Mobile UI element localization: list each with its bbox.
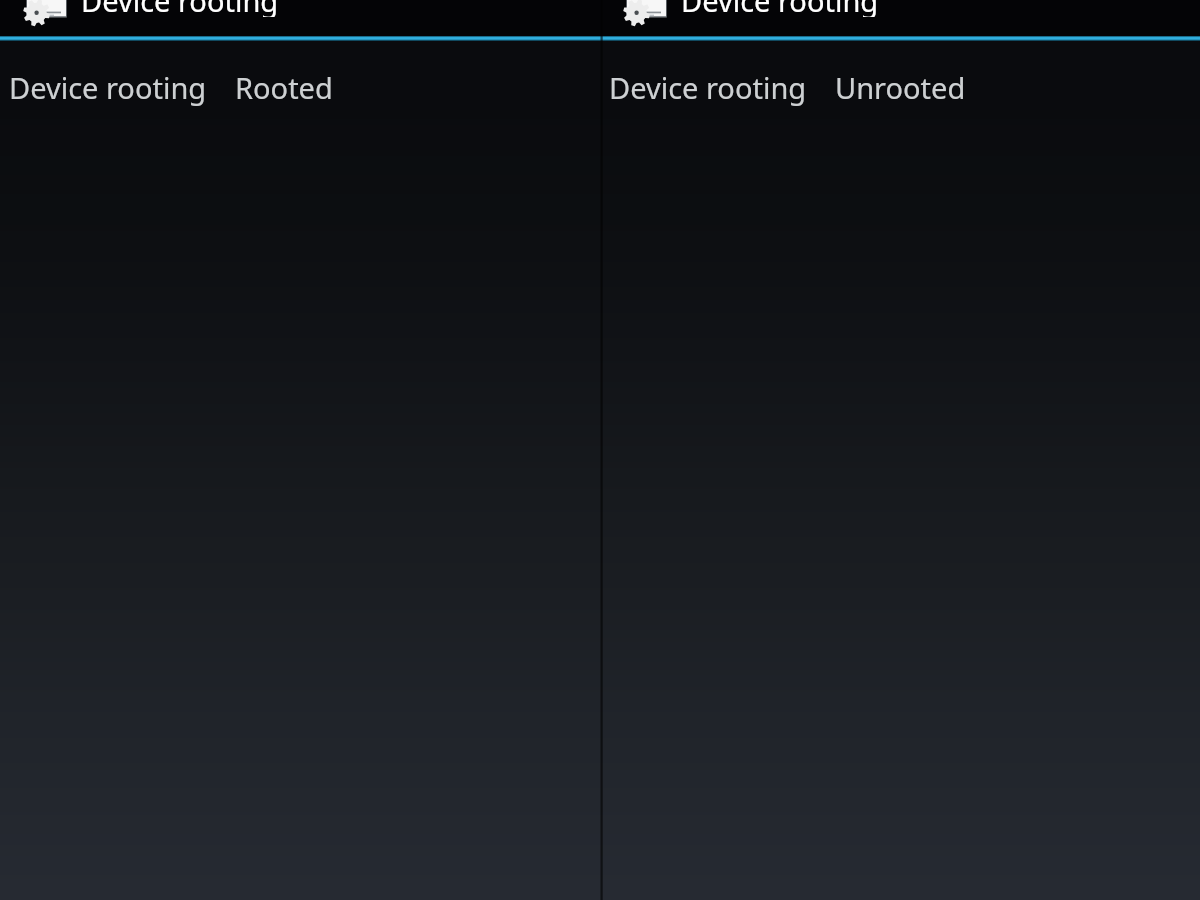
button[interactable]: Device rooting [0,68,600,107]
staticText: Rooted [235,68,333,107]
button[interactable]: Device rooting, home [0,0,290,36]
staticText: Unrooted [835,68,966,107]
staticText: Device rooting [609,68,807,107]
staticText: Device rooting [681,0,879,17]
button[interactable]: Device rooting, home [0,0,600,36]
button[interactable]: Device rooting, home [600,0,1200,36]
staticText: Device rooting [81,0,279,17]
button[interactable]: Device rooting [600,68,1200,107]
staticText: Device rooting [9,68,207,107]
button[interactable]: Device rooting, home [600,0,890,36]
